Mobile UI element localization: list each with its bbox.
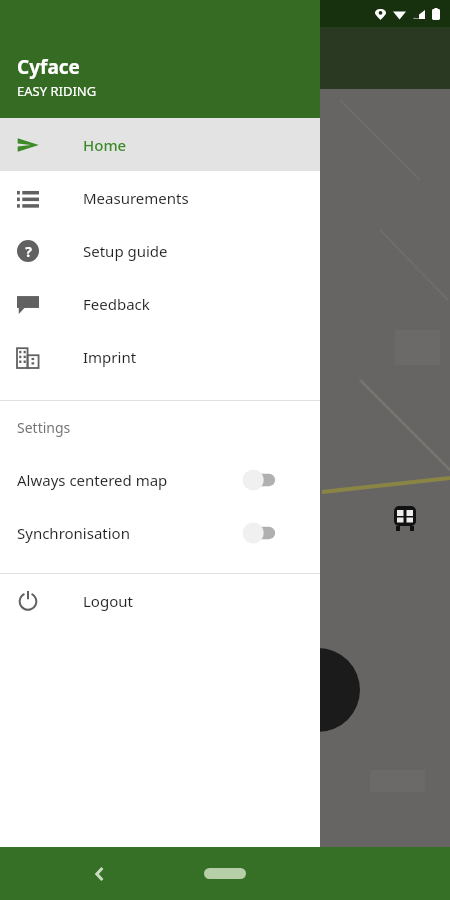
- button[interactable]: Measurements: [0, 171, 320, 224]
- staticText: Imprint: [83, 347, 137, 367]
- staticText: EASY RIDING: [17, 82, 97, 100]
- staticText: Feedback: [83, 294, 150, 314]
- button[interactable]: ?: [0, 224, 320, 277]
- button[interactable]: Always centered map: [0, 453, 320, 506]
- staticText: ?: [25, 242, 32, 261]
- button[interactable]: Imprint: [0, 330, 320, 383]
- button[interactable]: Back: [90, 864, 110, 884]
- button[interactable]: Home: [204, 868, 246, 879]
- staticText: Settings: [17, 418, 71, 437]
- staticText: Measurements: [83, 188, 189, 208]
- staticText: Cyface: [17, 54, 80, 80]
- staticText: Logout: [83, 591, 133, 611]
- staticText: Synchronisation: [17, 523, 240, 543]
- staticText: Setup guide: [83, 241, 168, 261]
- staticText: Always centered map: [17, 470, 240, 490]
- button[interactable]: Logout: [0, 574, 320, 627]
- button[interactable]: Home: [0, 118, 320, 171]
- button[interactable]: Feedback: [0, 277, 320, 330]
- button[interactable]: Synchronisation: [0, 506, 320, 559]
- staticText: Home: [83, 135, 127, 155]
